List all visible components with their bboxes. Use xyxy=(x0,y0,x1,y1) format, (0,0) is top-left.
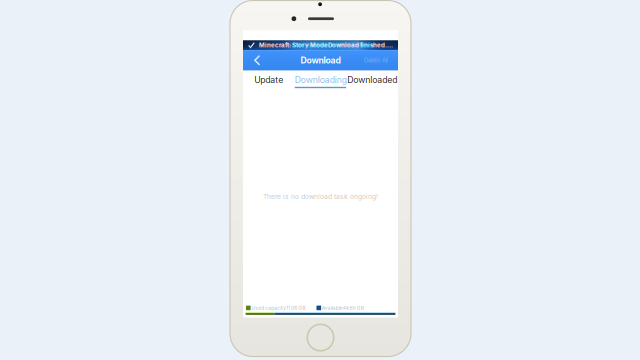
button[interactable]: Delete All xyxy=(358,52,398,69)
staticText: Downloading xyxy=(295,75,346,85)
staticText: Update xyxy=(254,75,283,85)
staticText: Used capacity11.06 GB xyxy=(251,305,305,311)
button[interactable]: Downloading xyxy=(295,70,346,88)
button[interactable]: Minecraft: Story Mode, download finished xyxy=(243,40,398,50)
staticText: Minecraft: Story ModeDownload finished..… xyxy=(259,41,393,49)
button[interactable]: Back xyxy=(243,50,267,70)
staticText: Downloaded xyxy=(347,75,397,85)
button[interactable]: Downloaded xyxy=(346,70,398,88)
button[interactable]: Update xyxy=(243,70,295,88)
staticText: Available44.65 GB xyxy=(322,305,364,311)
staticText: There is no download task ongoing! xyxy=(263,193,378,201)
staticText: Download xyxy=(300,55,340,65)
staticText: Delete All xyxy=(364,57,388,64)
